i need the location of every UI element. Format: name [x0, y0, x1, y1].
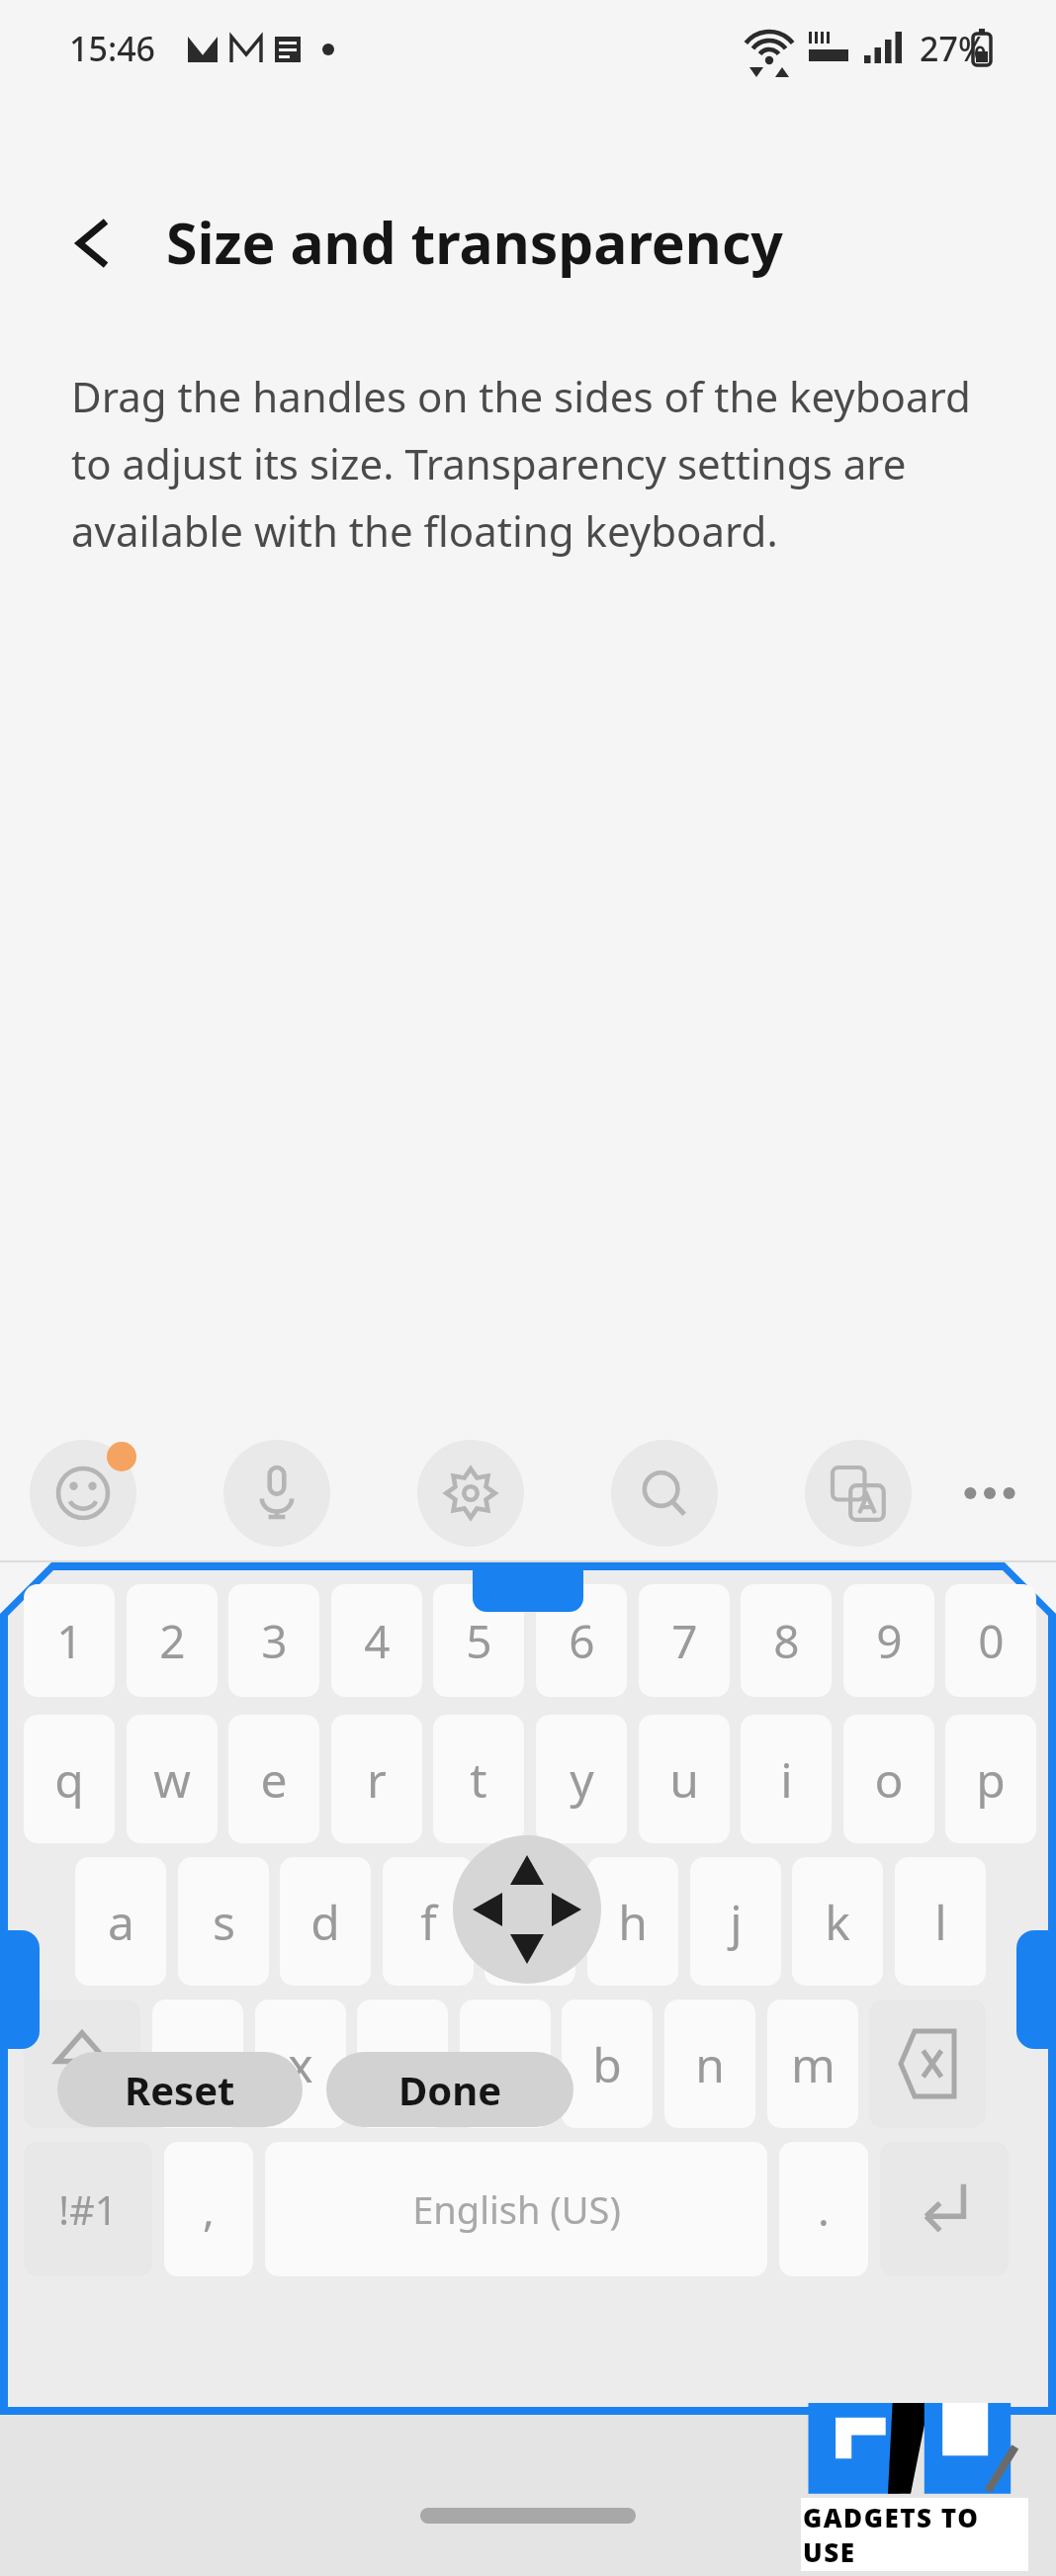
button[interactable]: !#1: [24, 2142, 152, 2276]
staticText: w: [153, 1747, 191, 1812]
button[interactable]: c: [357, 1999, 448, 2128]
button[interactable]: Search: [611, 1440, 718, 1547]
button[interactable]: q: [24, 1715, 115, 1843]
button[interactable]: ,: [164, 2142, 253, 2276]
button[interactable]: Enter: [880, 2142, 1009, 2276]
button[interactable]: Voice input: [223, 1440, 330, 1547]
staticText: r: [367, 1747, 387, 1812]
staticText: 5: [466, 1610, 492, 1672]
button[interactable]: Resize keyboard right: [1016, 1930, 1056, 2049]
staticText: p: [976, 1747, 1006, 1812]
button[interactable]: More options: [955, 1466, 1024, 1521]
staticText: 3: [261, 1610, 288, 1672]
button[interactable]: i: [741, 1715, 832, 1843]
staticText: h: [618, 1890, 648, 1954]
button[interactable]: f: [383, 1857, 474, 1986]
staticText: Drag the handles on the sides of the key…: [71, 368, 971, 560]
staticText: Size and transparency: [166, 204, 783, 281]
button[interactable]: 0: [945, 1584, 1036, 1697]
button[interactable]: 5: [433, 1584, 524, 1697]
staticText: 4: [364, 1610, 391, 1672]
staticText: k: [825, 1890, 850, 1954]
staticText: l: [934, 1890, 947, 1954]
button[interactable]: d: [280, 1857, 371, 1986]
button[interactable]: j: [690, 1857, 781, 1986]
staticText: y: [570, 1747, 594, 1812]
staticText: n: [695, 2032, 725, 2096]
staticText: a: [108, 1890, 134, 1954]
button[interactable]: h: [587, 1857, 678, 1986]
button[interactable]: Back: [49, 198, 140, 289]
button[interactable]: 1: [24, 1584, 115, 1697]
button[interactable]: .: [779, 2142, 868, 2276]
button[interactable]: m: [767, 1999, 858, 2128]
button[interactable]: e: [228, 1715, 319, 1843]
button[interactable]: Resize keyboard top: [473, 1570, 583, 1612]
button[interactable]: Shift: [24, 1999, 140, 2128]
staticText: Done: [398, 2063, 502, 2116]
button[interactable]: w: [127, 1715, 218, 1843]
button[interactable]: l: [895, 1857, 986, 1986]
button[interactable]: s: [178, 1857, 269, 1986]
button[interactable]: r: [331, 1715, 422, 1843]
staticText: x: [288, 2032, 313, 2096]
button[interactable]: Resize keyboard left: [0, 1930, 40, 2049]
staticText: ,: [203, 2179, 215, 2239]
button[interactable]: z: [152, 1999, 243, 2128]
button[interactable]: a: [75, 1857, 166, 1986]
button[interactable]: 8: [741, 1584, 832, 1697]
staticText: b: [592, 2032, 622, 2096]
staticText: !#1: [58, 2182, 118, 2236]
button[interactable]: t: [433, 1715, 524, 1843]
staticText: j: [730, 1890, 743, 1954]
staticText: t: [470, 1747, 487, 1812]
button[interactable]: Settings: [417, 1440, 524, 1547]
button[interactable]: k: [792, 1857, 883, 1986]
staticText: GADGETS TO USE: [803, 2500, 1026, 2569]
staticText: English (US): [412, 2183, 621, 2235]
staticText: 7: [671, 1610, 698, 1672]
button[interactable]: English (US): [265, 2142, 767, 2276]
button[interactable]: 2: [127, 1584, 218, 1697]
staticText: 8: [773, 1610, 800, 1672]
staticText: g: [515, 1890, 545, 1954]
button[interactable]: o: [843, 1715, 934, 1843]
button[interactable]: x: [255, 1999, 346, 2128]
staticText: s: [213, 1890, 235, 1954]
button[interactable]: Emoji: [30, 1440, 136, 1547]
staticText: Reset: [125, 2063, 235, 2116]
button[interactable]: 4: [331, 1584, 422, 1697]
staticText: 15:46: [69, 26, 156, 71]
staticText: .: [818, 2179, 830, 2239]
staticText: 2: [159, 1610, 186, 1672]
button[interactable]: Backspace: [869, 1999, 986, 2128]
button[interactable]: 6: [536, 1584, 627, 1697]
button[interactable]: b: [562, 1999, 653, 2128]
staticText: z: [187, 2032, 210, 2096]
button[interactable]: Reset: [57, 2052, 303, 2127]
staticText: 9: [876, 1610, 903, 1672]
button[interactable]: v: [460, 1999, 551, 2128]
button[interactable]: Translate: [805, 1440, 912, 1547]
staticText: 0: [978, 1610, 1005, 1672]
button[interactable]: u: [639, 1715, 730, 1843]
staticText: v: [493, 2032, 518, 2096]
button[interactable]: n: [664, 1999, 755, 2128]
staticText: m: [791, 2032, 836, 2096]
staticText: o: [874, 1747, 904, 1812]
staticText: q: [54, 1747, 84, 1812]
staticText: 1: [56, 1610, 83, 1672]
button[interactable]: p: [945, 1715, 1036, 1843]
button[interactable]: y: [536, 1715, 627, 1843]
staticText: 6: [569, 1610, 595, 1672]
button[interactable]: Move keyboard: [453, 1835, 601, 1984]
button[interactable]: Done: [326, 2052, 573, 2127]
staticText: e: [260, 1747, 288, 1812]
staticText: 27%: [920, 26, 987, 71]
button[interactable]: 9: [843, 1584, 934, 1697]
staticText: c: [391, 2032, 414, 2096]
button[interactable]: 3: [228, 1584, 319, 1697]
button[interactable]: 7: [639, 1584, 730, 1697]
button[interactable]: g: [484, 1857, 575, 1986]
staticText: u: [669, 1747, 699, 1812]
